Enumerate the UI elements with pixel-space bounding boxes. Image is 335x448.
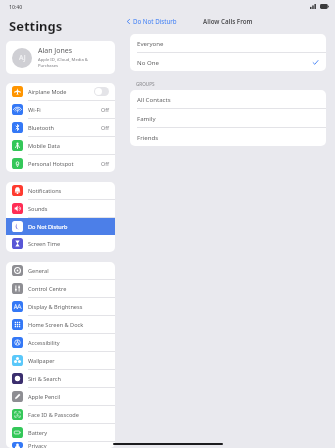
staticText: 10:40 [9, 3, 23, 10]
staticText: Personal Hotspot [28, 160, 74, 168]
button[interactable]: Apple Pencil [6, 388, 115, 405]
button[interactable]: Privacy [6, 442, 115, 448]
button[interactable]: Wi-Fi [6, 101, 115, 118]
staticText: Do Not Disturb [133, 17, 177, 25]
staticText: Off [101, 124, 109, 131]
staticText: Friends [137, 133, 159, 141]
button[interactable]: Screen Time [6, 235, 115, 252]
button[interactable]: Face ID & Passcode [6, 406, 115, 423]
button[interactable]: Mobile Data [6, 137, 115, 154]
staticText: AJ [19, 53, 26, 63]
button[interactable]: Everyone [130, 34, 326, 52]
button[interactable]: Personal Hotspot [6, 155, 115, 172]
staticText: Airplane Mode [28, 88, 67, 96]
staticText: Sounds [28, 205, 48, 213]
staticText: Alan Jones [38, 46, 73, 56]
staticText: Battery [28, 429, 48, 437]
staticText: Apple ID, iCloud, Media & Purchases [38, 57, 109, 69]
button[interactable]: Sounds [6, 200, 115, 217]
staticText: Face ID & Passcode [28, 411, 79, 419]
button[interactable]: Home Screen & Dock [6, 316, 115, 333]
staticText: No One [137, 58, 159, 66]
staticText: Control Centre [28, 285, 67, 293]
staticText: GROUPS [136, 81, 155, 87]
button[interactable]: Control Centre [6, 280, 115, 297]
button[interactable]: No One [130, 53, 326, 71]
staticText: Off [101, 160, 109, 167]
staticText: Privacy [28, 442, 47, 448]
staticText: Apple Pencil [28, 393, 61, 401]
button[interactable]: Friends [130, 128, 326, 146]
button[interactable]: Notifications [6, 182, 115, 199]
staticText: Mobile Data [28, 142, 60, 150]
staticText: Screen Time [28, 240, 61, 248]
staticText: Settings [9, 17, 63, 35]
staticText: All Contacts [137, 95, 171, 103]
button[interactable]: Airplane Mode [6, 83, 115, 100]
staticText: Notifications [28, 187, 62, 195]
button[interactable]: All Contacts [130, 90, 326, 108]
staticText: Wi-Fi [28, 106, 41, 114]
button[interactable]: Battery [6, 424, 115, 441]
button[interactable]: General [6, 262, 115, 279]
button[interactable]: Airplane Mode toggle [94, 87, 109, 96]
button[interactable]: Family [130, 109, 326, 127]
staticText: Allow Calls From [203, 17, 253, 25]
staticText: General [28, 267, 49, 275]
staticText: Family [137, 114, 156, 122]
button[interactable]: Bluetooth [6, 119, 115, 136]
staticText: Wallpaper [28, 357, 55, 365]
button[interactable]: Wallpaper [6, 352, 115, 369]
staticText: Display & Brightness [28, 303, 83, 311]
button[interactable]: Do Not Disturb [121, 15, 182, 27]
staticText: Siri & Search [28, 375, 61, 383]
staticText: Off [101, 106, 109, 113]
staticText: Everyone [137, 39, 164, 47]
button[interactable]: Accessibility [6, 334, 115, 351]
staticText: Accessibility [28, 339, 60, 347]
button[interactable]: Siri & Search [6, 370, 115, 387]
button[interactable]: Do Not Disturb [6, 218, 115, 235]
staticText: Bluetooth [28, 124, 54, 132]
button[interactable]: Display & Brightness [6, 298, 115, 315]
staticText: Home Screen & Dock [28, 321, 84, 329]
button[interactable]: AJ [6, 41, 115, 74]
staticText: Do Not Disturb [28, 223, 68, 231]
